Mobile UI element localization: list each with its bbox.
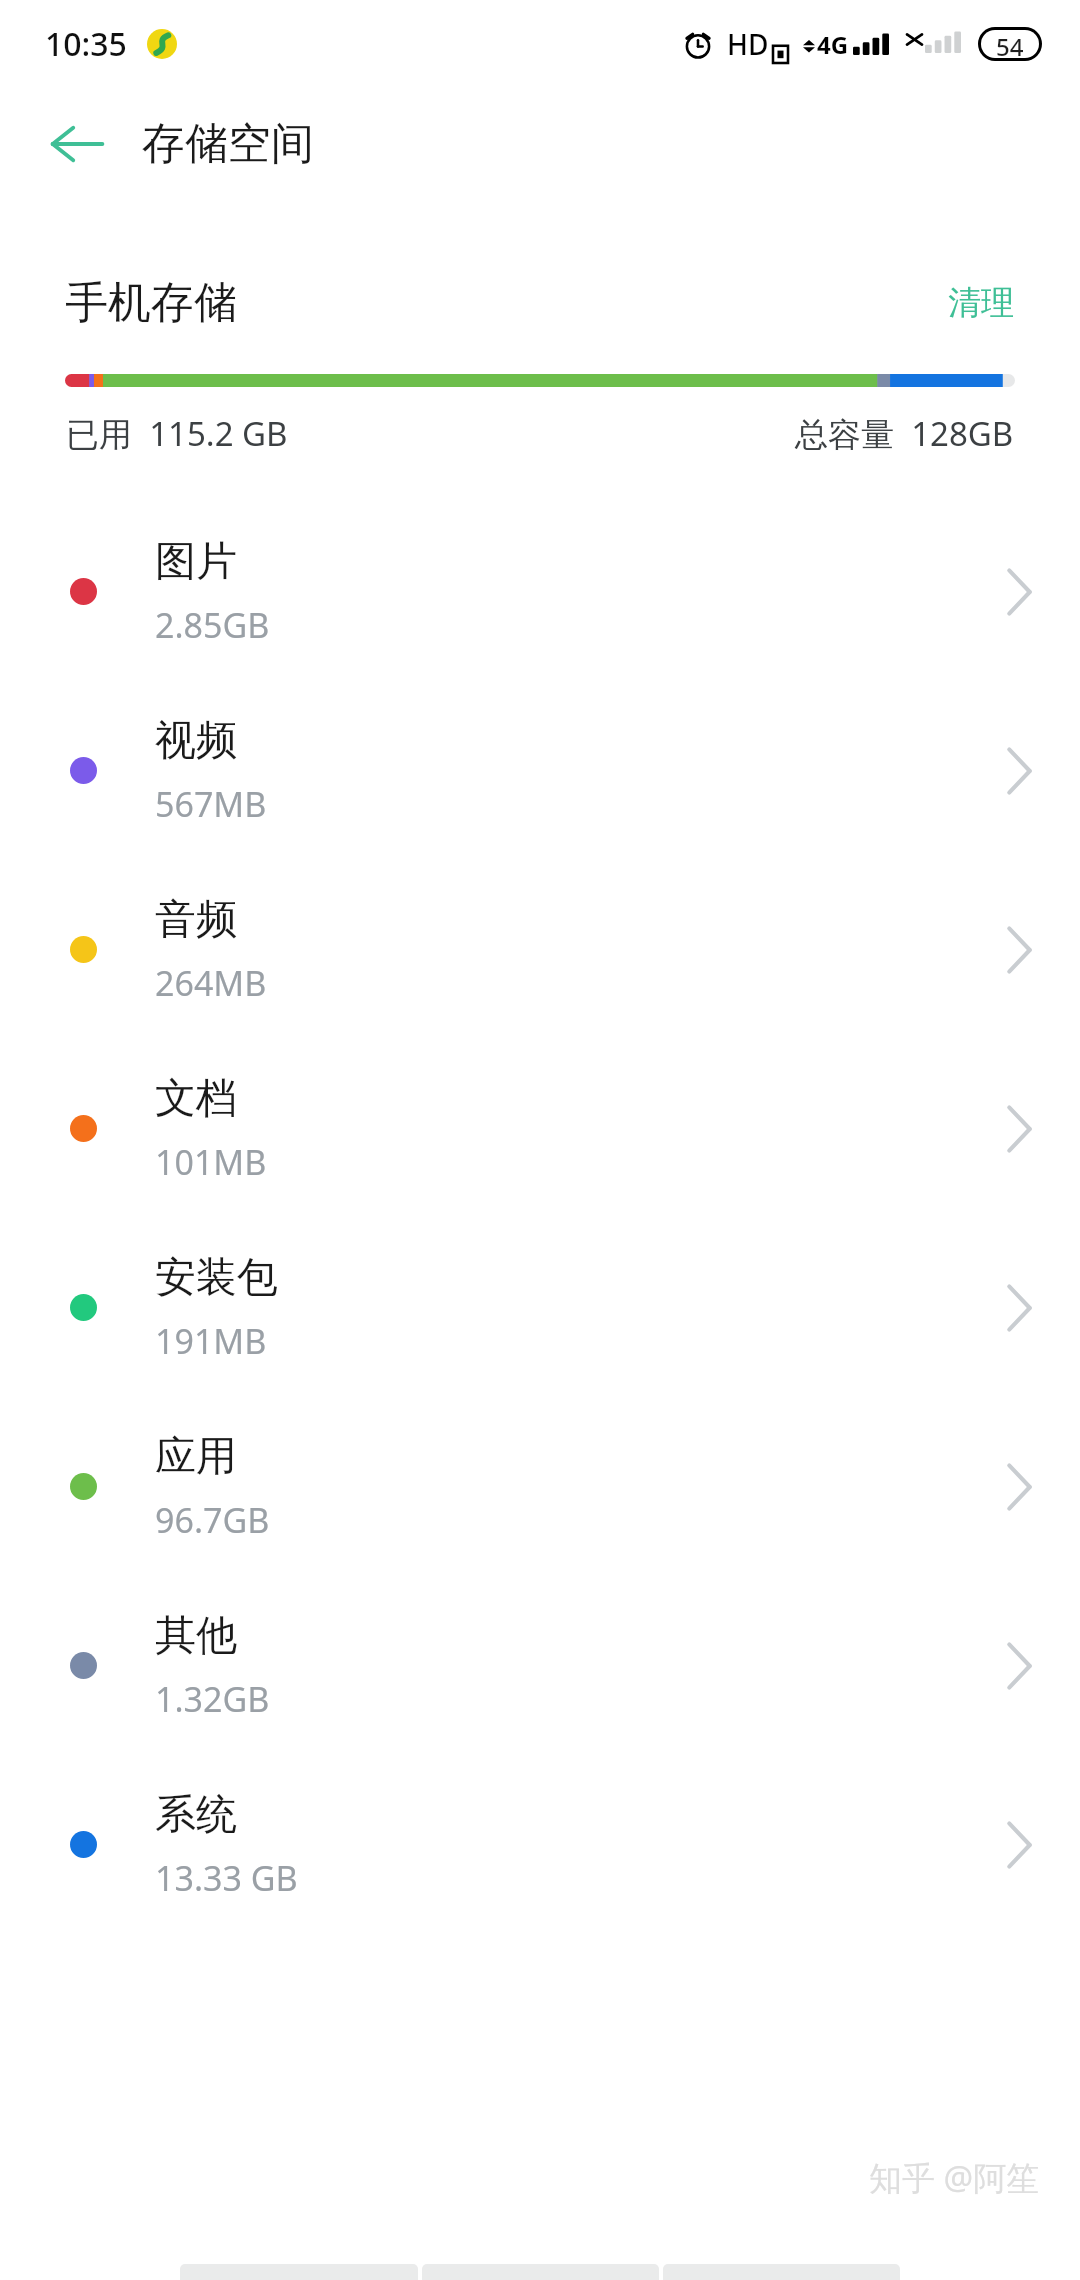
staticText: 567MB (155, 781, 267, 827)
staticText: 96.7GB (155, 1497, 270, 1543)
staticText: 总容量 128GB (795, 411, 1014, 456)
staticText: 图片 (155, 536, 237, 588)
staticText: 视频 (155, 715, 237, 767)
button[interactable]: 返回 (32, 99, 122, 189)
staticText: 1.32GB (155, 1676, 270, 1722)
staticText: 文档 (155, 1073, 237, 1125)
staticText: 系统 (155, 1789, 237, 1841)
staticText: 2.85GB (155, 602, 270, 648)
staticText: 13.33 GB (155, 1855, 298, 1901)
staticText: 存储空间 (142, 117, 314, 171)
button[interactable]: 应用 (0, 1397, 1080, 1576)
staticText: 191MB (155, 1318, 267, 1364)
staticText: 54 (996, 30, 1024, 58)
staticText: 安装包 (155, 1252, 278, 1304)
staticText: 101MB (155, 1139, 267, 1185)
staticText: 4G (817, 28, 849, 61)
button[interactable]: 图片 (0, 502, 1080, 681)
staticText: 应用 (155, 1431, 237, 1483)
button[interactable]: 系统 (0, 1755, 1080, 1934)
staticText: HD (727, 25, 769, 63)
button[interactable]: 清理 (942, 274, 1020, 332)
staticText: 清理 (948, 282, 1014, 324)
staticText: 264MB (155, 960, 267, 1006)
staticText: 10:35 (45, 22, 127, 66)
staticText: 已用 115.2 GB (66, 411, 288, 456)
button[interactable]: 视频 (0, 681, 1080, 860)
staticText: 其他 (155, 1610, 237, 1662)
staticText: 知乎 @阿笙 (869, 2155, 1040, 2200)
button[interactable]: 安装包 (0, 1218, 1080, 1397)
button[interactable]: 音频 (0, 860, 1080, 1039)
button[interactable]: 文档 (0, 1039, 1080, 1218)
staticText: 音频 (155, 894, 237, 946)
button[interactable]: 其他 (0, 1576, 1080, 1755)
staticText: 手机存储 (65, 276, 237, 330)
